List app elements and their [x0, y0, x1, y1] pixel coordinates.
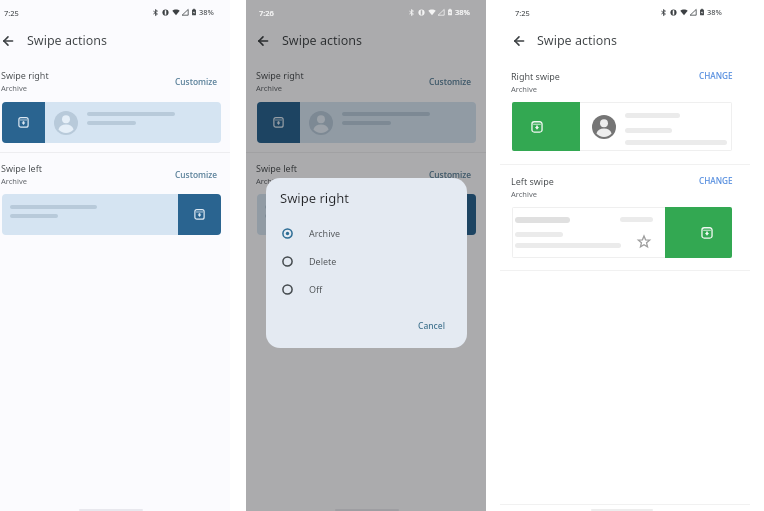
staticText: Archive [256, 176, 282, 186]
button[interactable]: Navigate up [509, 31, 529, 51]
staticText: Off [309, 283, 323, 295]
staticText: 7:25 [4, 8, 19, 18]
staticText: Customize [175, 76, 218, 87]
staticText: Swipe right [256, 69, 304, 81]
staticText: CHANGE [699, 70, 733, 81]
staticText: Swipe actions [27, 32, 107, 49]
staticText: Customize [175, 169, 218, 180]
staticText: Left swipe [511, 175, 554, 187]
button[interactable]: Navigate up [253, 31, 273, 51]
button[interactable]: CHANGE [696, 172, 736, 189]
button[interactable]: Customize [173, 167, 220, 182]
staticText: 38% [707, 7, 722, 17]
staticText: 7:25 [515, 8, 530, 18]
staticText: 38% [455, 7, 470, 17]
staticText: Swipe actions [537, 32, 617, 49]
staticText: Swipe left [256, 162, 298, 174]
staticText: Customize [429, 76, 472, 87]
staticText: Archive [511, 189, 537, 199]
button[interactable]: Customize [427, 74, 474, 89]
staticText: Customize [429, 169, 472, 180]
button[interactable]: Archive [266, 219, 467, 247]
button[interactable]: Cancel [414, 317, 449, 335]
button[interactable]: Delete [266, 247, 467, 275]
button[interactable]: Off [266, 275, 467, 303]
staticText: Swipe actions [282, 32, 362, 49]
button[interactable]: CHANGE [696, 67, 736, 84]
staticText: Archive [1, 83, 27, 93]
button[interactable]: Customize [427, 167, 474, 182]
button[interactable]: Navigate up [0, 31, 18, 51]
staticText: Swipe right [1, 69, 49, 81]
staticText: 7:26 [259, 8, 274, 18]
staticText: Swipe left [1, 162, 43, 174]
staticText: Cancel [418, 320, 445, 332]
button[interactable]: Customize [173, 74, 220, 89]
staticText: Archive [511, 84, 537, 94]
staticText: Archive [1, 176, 27, 186]
staticText: Archive [309, 227, 341, 239]
staticText: Archive [256, 83, 282, 93]
staticText: Delete [309, 255, 337, 267]
staticText: 38% [199, 7, 214, 17]
staticText: Right swipe [511, 70, 560, 82]
staticText: CHANGE [699, 175, 733, 186]
staticText: Swipe right [280, 189, 349, 207]
